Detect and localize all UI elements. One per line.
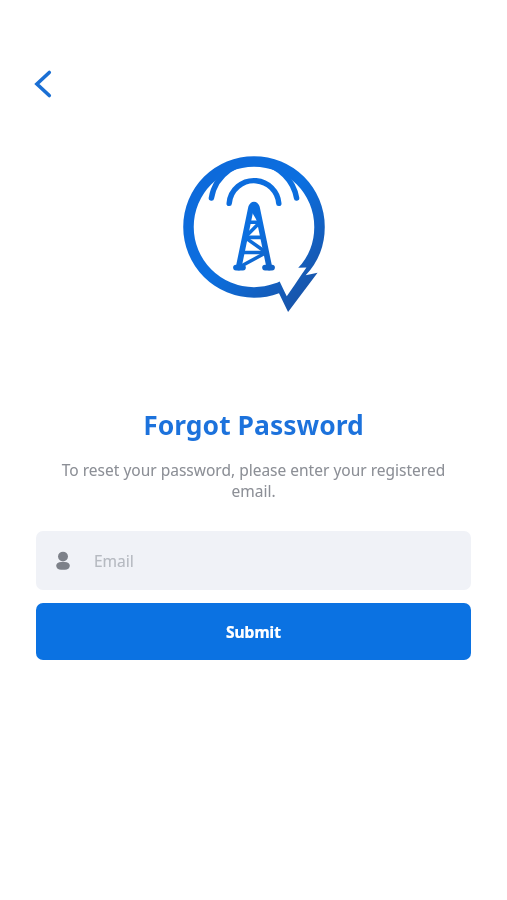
staticText: Forgot Password bbox=[143, 407, 364, 443]
staticText: To reset your password, please enter you… bbox=[44, 459, 463, 502]
button[interactable]: Submit bbox=[36, 603, 471, 660]
staticText: Submit bbox=[226, 621, 281, 642]
button[interactable]: Back bbox=[22, 62, 66, 106]
staticText: Email bbox=[94, 550, 134, 571]
button[interactable]: Email bbox=[36, 531, 471, 590]
